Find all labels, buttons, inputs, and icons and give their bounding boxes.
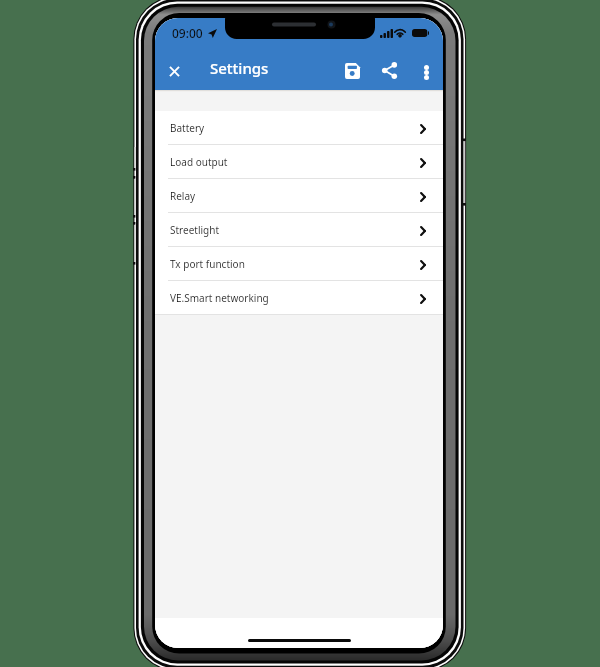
staticText: Streetlight bbox=[170, 223, 220, 237]
button[interactable]: Battery bbox=[155, 111, 443, 145]
button[interactable]: More options bbox=[411, 57, 441, 87]
staticText: VE.Smart networking bbox=[170, 291, 269, 305]
button[interactable]: Save bbox=[334, 53, 370, 89]
staticText: Relay bbox=[170, 189, 196, 203]
button[interactable]: Load output bbox=[155, 145, 443, 179]
button[interactable]: Close bbox=[156, 53, 192, 89]
button[interactable]: Share bbox=[371, 52, 407, 88]
button[interactable]: Tx port function bbox=[155, 247, 443, 281]
staticText: Load output bbox=[170, 155, 228, 169]
staticText: Tx port function bbox=[170, 257, 245, 271]
staticText: Battery bbox=[170, 121, 205, 135]
button[interactable]: Relay bbox=[155, 179, 443, 213]
button[interactable]: VE.Smart networking bbox=[155, 281, 443, 315]
staticText: 09:00 bbox=[172, 25, 203, 41]
button[interactable]: Streetlight bbox=[155, 213, 443, 247]
staticText: Settings bbox=[210, 58, 269, 78]
